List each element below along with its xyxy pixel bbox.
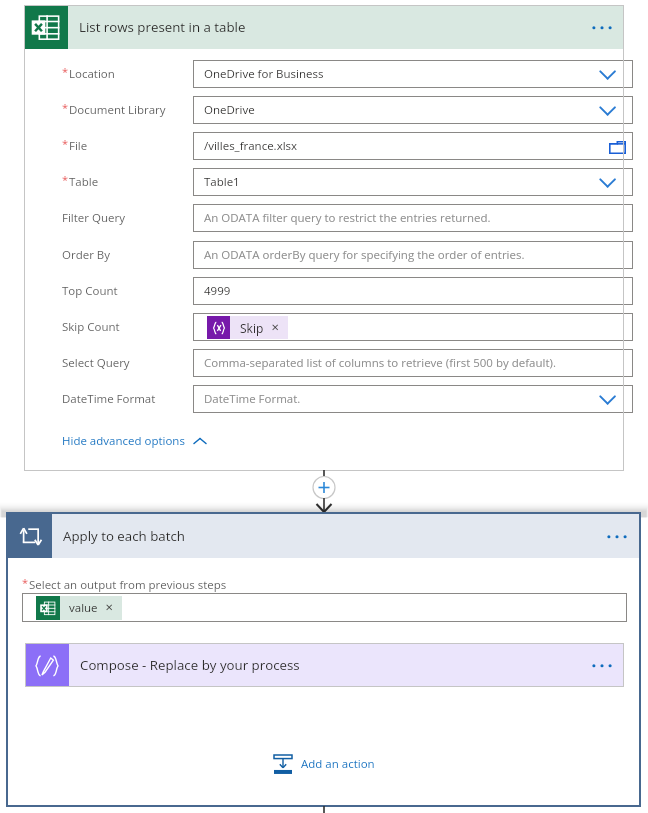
button[interactable]: Hide advanced options	[62, 430, 208, 452]
staticText: File	[69, 138, 88, 154]
button[interactable]: OneDrive for Business	[193, 60, 633, 88]
staticText: An ODATA filter query to restrict the en…	[204, 210, 491, 226]
button[interactable]: value	[22, 593, 627, 622]
button[interactable]: List rows present in a table	[24, 5, 624, 49]
staticText: List rows present in a table	[79, 18, 246, 36]
staticText: Comma-separated list of columns to retri…	[204, 355, 556, 371]
staticText: DateTime Format.	[204, 391, 301, 407]
staticText: Compose - Replace by your process	[80, 656, 300, 674]
staticText: DateTime Format	[62, 391, 156, 407]
staticText: Select an output from previous steps	[29, 577, 227, 593]
staticText: /villes_france.xlsx	[204, 138, 298, 154]
staticText: Filter Query	[62, 210, 125, 226]
staticText: *	[62, 100, 69, 115]
button[interactable]: 4999	[193, 277, 633, 305]
staticText: OneDrive for Business	[204, 66, 324, 82]
staticText: ✕	[105, 602, 114, 614]
button[interactable]: Table1	[193, 168, 633, 196]
staticText: Skip	[240, 320, 264, 336]
staticText: Skip Count	[62, 319, 120, 335]
button[interactable]: Comma-separated list of columns to retri…	[193, 349, 633, 377]
staticText: Order By	[62, 247, 111, 263]
staticText: ✕	[271, 322, 280, 334]
button[interactable]: More commands	[580, 643, 624, 687]
staticText: *	[22, 575, 29, 590]
button[interactable]: Skip	[193, 313, 633, 341]
staticText: Apply to each batch	[63, 527, 185, 545]
staticText: Location	[69, 66, 115, 82]
staticText: Top Count	[62, 283, 118, 299]
staticText: value	[69, 600, 98, 616]
staticText: *	[62, 172, 69, 187]
button[interactable]: More commands	[595, 514, 639, 558]
button[interactable]: Apply to each batch	[8, 514, 639, 558]
button[interactable]: Add an action	[273, 753, 375, 775]
staticText: *	[62, 64, 69, 79]
staticText: Select Query	[62, 355, 130, 371]
staticText: Table	[69, 174, 99, 190]
staticText: Hide advanced options	[62, 433, 185, 449]
staticText: Add an action	[301, 756, 375, 772]
staticText: An ODATA orderBy query for specifying th…	[204, 247, 525, 263]
staticText: *	[62, 136, 69, 151]
button[interactable]: Compose - Replace by your process	[25, 643, 624, 687]
button[interactable]: An ODATA filter query to restrict the en…	[193, 204, 633, 232]
button[interactable]: OneDrive	[193, 96, 633, 124]
button[interactable]: /villes_france.xlsx	[193, 132, 633, 160]
staticText: Table1	[204, 174, 240, 190]
staticText: OneDrive	[204, 102, 255, 118]
button[interactable]: DateTime Format.	[193, 385, 633, 413]
staticText: Document Library	[69, 102, 166, 118]
button[interactable]: More commands	[580, 5, 624, 49]
button[interactable]: An ODATA orderBy query for specifying th…	[193, 241, 633, 269]
staticText: 4999	[204, 283, 231, 299]
